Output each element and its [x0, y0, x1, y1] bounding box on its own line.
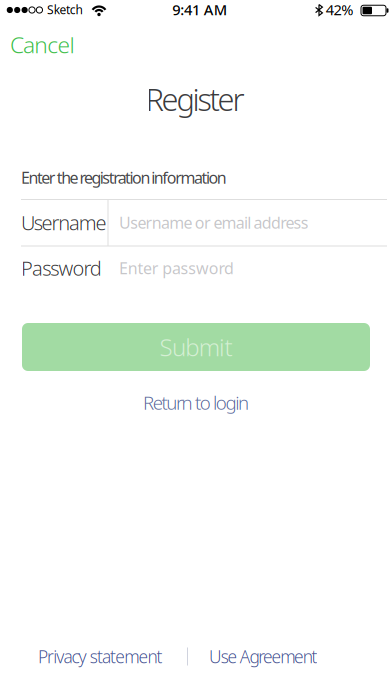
staticText: Password [21, 255, 102, 281]
staticText: Use Agreement [209, 645, 317, 668]
button[interactable]: Use Agreement [209, 646, 321, 666]
staticText: Enter password [119, 257, 234, 279]
button[interactable]: Privacy statement [38, 646, 170, 666]
button[interactable]: Return to login [143, 390, 249, 415]
staticText: 9:41 AM [172, 0, 227, 19]
staticText: Username [21, 209, 107, 236]
staticText: Cancel [10, 29, 74, 59]
staticText: Register [145, 79, 244, 119]
staticText: Username or email address [119, 212, 309, 233]
staticText: Enter the registration information [21, 167, 227, 188]
staticText: 42% [326, 0, 353, 19]
button[interactable]: Submit [22, 323, 370, 371]
staticText: Return to login [143, 390, 249, 415]
staticText: Privacy statement [38, 645, 163, 668]
staticText: Sketch [47, 1, 82, 17]
button[interactable]: Cancel [10, 33, 80, 55]
staticText: Submit [159, 331, 232, 363]
